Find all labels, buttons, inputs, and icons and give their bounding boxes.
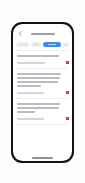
button[interactable] bbox=[43, 42, 61, 47]
button[interactable] bbox=[31, 42, 41, 47]
button[interactable]: Back bbox=[16, 29, 25, 38]
button[interactable]: Open item bbox=[13, 69, 72, 99]
button[interactable] bbox=[16, 42, 29, 47]
button[interactable]: Open item bbox=[13, 51, 72, 69]
button[interactable]: Open item bbox=[66, 117, 69, 120]
button[interactable]: Open item bbox=[66, 91, 69, 94]
button[interactable] bbox=[63, 42, 69, 47]
button[interactable]: Open item bbox=[13, 99, 72, 125]
button[interactable]: Open item bbox=[66, 61, 69, 64]
